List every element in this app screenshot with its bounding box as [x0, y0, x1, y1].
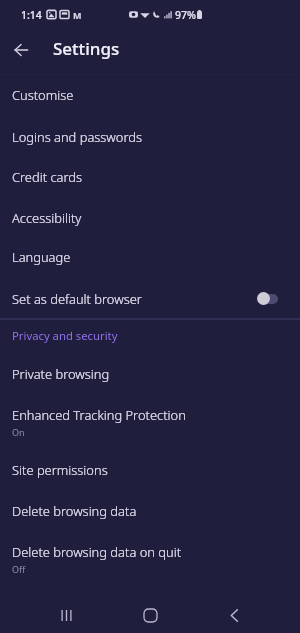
staticText: M [73, 9, 82, 21]
button[interactable]: Enhanced Tracking Protection [0, 394, 300, 450]
button[interactable]: Back [206, 596, 262, 633]
staticText: Credit cards [12, 168, 83, 186]
button[interactable]: Delete browsing data on quit [0, 531, 300, 587]
button[interactable]: Recent apps [38, 596, 94, 633]
button[interactable]: Delete browsing data [0, 490, 300, 531]
button[interactable]: Set as default browser [0, 278, 300, 319]
staticText: Delete browsing data on quit [12, 543, 182, 561]
button[interactable]: Site permissions [0, 449, 300, 490]
button[interactable]: Language [0, 236, 300, 277]
button[interactable]: Navigate up [0, 29, 39, 68]
button[interactable]: Logins and passwords [0, 116, 300, 157]
button[interactable]: Home [122, 596, 178, 633]
button[interactable]: Accessibility [0, 197, 300, 238]
staticText: 1:14 [21, 8, 42, 22]
staticText: Off [12, 563, 26, 575]
button[interactable]: Private browsing [0, 353, 300, 394]
staticText: Delete browsing data [12, 502, 137, 520]
staticText: Private browsing [12, 365, 110, 383]
staticText: Language [12, 248, 71, 266]
staticText: Logins and passwords [12, 128, 143, 146]
staticText: On [12, 426, 25, 438]
staticText: Settings [53, 37, 120, 60]
button[interactable]: Customise [0, 74, 300, 115]
staticText: Set as default browser [12, 290, 142, 308]
staticText: 97% [175, 8, 196, 22]
staticText: Enhanced Tracking Protection [12, 406, 186, 424]
button[interactable]: Credit cards [0, 156, 300, 197]
staticText: Privacy and security [12, 328, 118, 343]
staticText: Customise [12, 86, 74, 104]
staticText: Accessibility [12, 209, 82, 227]
staticText: Site permissions [12, 461, 108, 479]
